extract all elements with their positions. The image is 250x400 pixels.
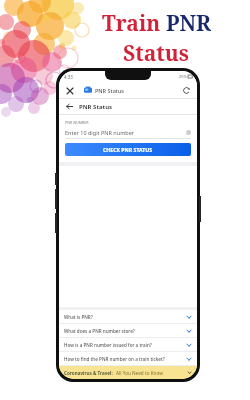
staticText: How to find the PNR number on a train ti… [64, 356, 165, 362]
button[interactable]: CHECK PNR STATUS [65, 143, 191, 156]
button[interactable]: Refresh [181, 85, 192, 96]
staticText: All You Need to Know [116, 370, 163, 376]
staticText: CHECK PNR STATUS [103, 146, 153, 153]
button[interactable]: Back [64, 101, 75, 112]
staticText: Enter 10 digit PNR number [65, 129, 135, 136]
button[interactable]: How is a PNR number issued for a train? [59, 338, 197, 351]
button[interactable]: What is PNR? [59, 310, 197, 323]
staticText: PNR Status [95, 87, 125, 94]
staticText: 25% [179, 74, 187, 79]
staticText: PNR [166, 9, 211, 38]
button[interactable]: Close [64, 85, 75, 96]
staticText: How is a PNR number issued for a train? [64, 342, 152, 348]
staticText: PNR Status [79, 103, 113, 111]
staticText: Coronavirus & Travel: [64, 370, 113, 376]
button[interactable]: How to find the PNR number on a train ti… [59, 352, 197, 365]
staticText: Train [102, 9, 166, 38]
button[interactable]: Coronavirus & Travel: [59, 366, 197, 379]
staticText: 4:33 [64, 74, 73, 80]
staticText: What is PNR? [64, 314, 93, 320]
staticText: PNR NUMBER [65, 120, 89, 125]
staticText: What does a PNR number store? [64, 328, 135, 334]
button[interactable]: What does a PNR number store? [59, 324, 197, 337]
button[interactable]: Enter 10 digit PNR number [65, 127, 191, 138]
staticText: Status [123, 39, 189, 68]
